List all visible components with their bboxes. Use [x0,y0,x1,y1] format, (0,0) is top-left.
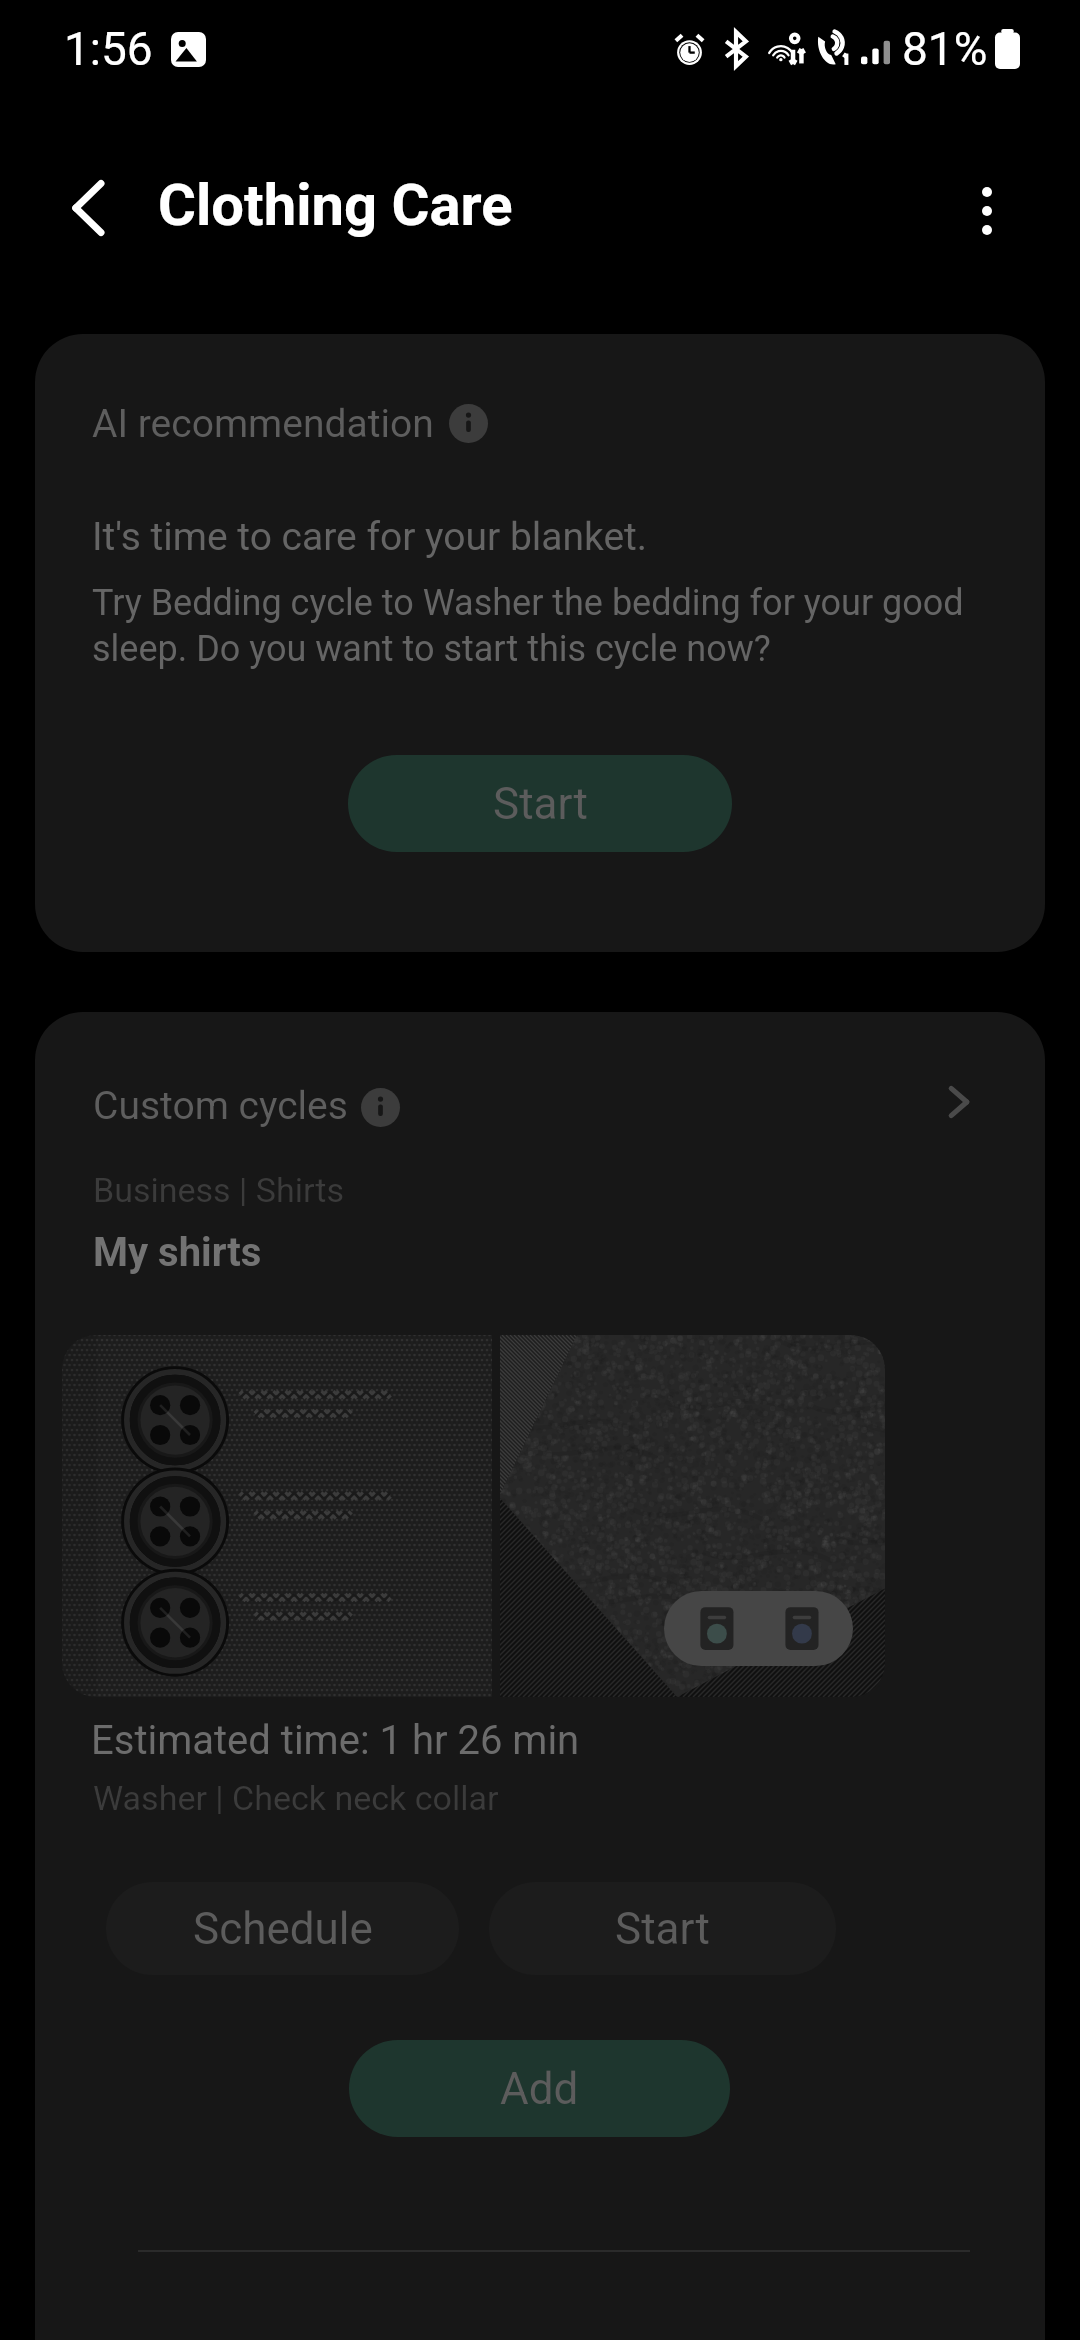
staticText: Estimated time: 1 hr 26 min [91,1717,580,1764]
staticText: Custom cycles [93,1083,348,1129]
staticText: AI recommendation [92,401,434,447]
button[interactable]: Schedule [106,1882,459,1975]
button[interactable]: Open custom cycles [918,1062,998,1142]
staticText: Add [500,2063,579,2115]
button[interactable]: Start [348,755,732,852]
button[interactable]: More options [924,148,1049,273]
staticText: Business | Shirts [93,1170,345,1210]
staticText: 81% [902,22,988,76]
staticText: Schedule [193,1903,373,1955]
staticText: It's time to care for your blanket. [92,514,648,560]
staticText: Start [493,778,588,830]
staticText: Clothing Care [158,171,513,239]
button[interactable]: Back [26,145,151,270]
button[interactable]: Add [349,2040,730,2137]
staticText: Try Bedding cycle to Washer the bedding … [92,582,992,669]
button[interactable]: Start [489,1882,836,1975]
staticText: Start [615,1903,710,1955]
staticText: 1:56 [64,22,153,76]
staticText: My shirts [93,1229,262,1276]
staticText: Washer | Check neck collar [93,1778,499,1818]
